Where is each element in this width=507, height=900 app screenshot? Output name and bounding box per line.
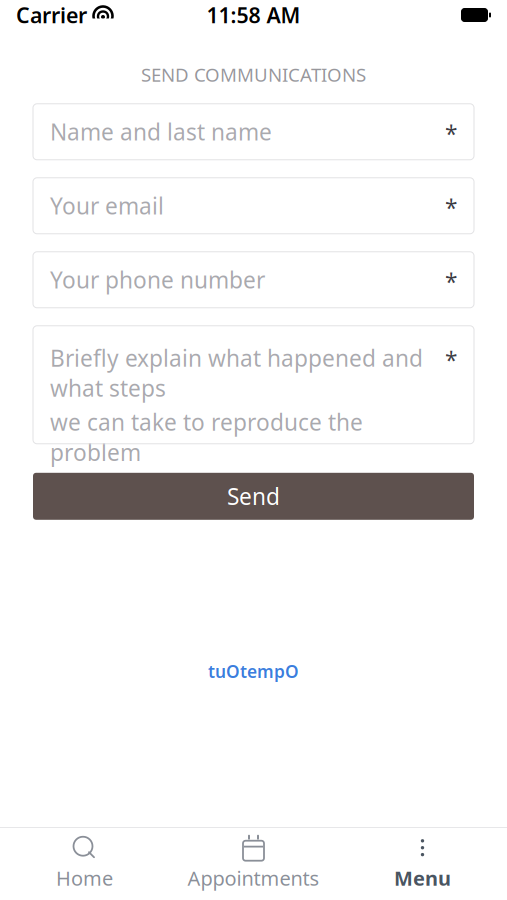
- staticText: Carrier: [16, 1, 87, 29]
- staticText: Briefly explain what happened and what s…: [50, 343, 423, 403]
- button[interactable]: tuOtempO: [198, 654, 309, 689]
- staticText: Your email: [50, 191, 164, 221]
- staticText: *: [445, 345, 457, 375]
- staticText: *: [445, 267, 457, 297]
- staticText: Appointments: [187, 865, 319, 891]
- button[interactable]: Appointments: [169, 827, 338, 900]
- staticText: we can take to reproduce the problem: [50, 407, 363, 467]
- staticText: Menu: [394, 865, 451, 891]
- staticText: Home: [56, 865, 113, 891]
- staticText: Name and last name: [50, 117, 272, 147]
- staticText: Send: [227, 481, 280, 511]
- staticText: *: [445, 119, 457, 149]
- staticText: *: [445, 193, 457, 223]
- staticText: 11:58 AM: [206, 1, 300, 29]
- staticText: Your phone number: [50, 265, 265, 295]
- button[interactable]: Send: [33, 473, 474, 520]
- staticText: tuOtempO: [208, 660, 299, 683]
- button[interactable]: Home: [0, 827, 169, 900]
- button[interactable]: Menu: [338, 827, 507, 900]
- staticText: SEND COMMUNICATIONS: [141, 62, 366, 87]
